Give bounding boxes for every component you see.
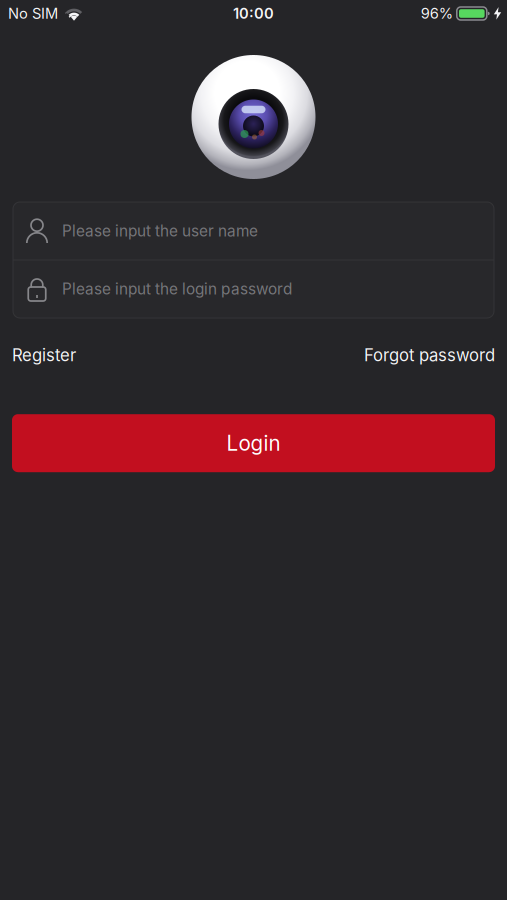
staticText: No SIM: [8, 5, 58, 22]
button[interactable]: Register: [12, 345, 76, 365]
button[interactable]: Login: [12, 414, 495, 472]
staticText: Please input the login password: [62, 280, 292, 298]
button[interactable]: Forgot password: [364, 345, 495, 365]
staticText: Forgot password: [364, 345, 495, 365]
staticText: 96%: [421, 5, 453, 22]
staticText: Login: [226, 431, 280, 456]
staticText: Register: [12, 345, 76, 365]
button[interactable]: Please input the login password: [13, 260, 494, 317]
staticText: Please input the user name: [62, 222, 258, 240]
button[interactable]: Please input the user name: [13, 202, 494, 259]
staticText: 10:00: [233, 5, 274, 22]
